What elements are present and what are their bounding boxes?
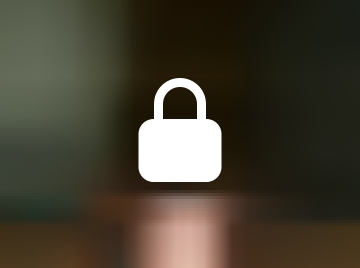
button[interactable]: Locked: [0, 0, 360, 268]
